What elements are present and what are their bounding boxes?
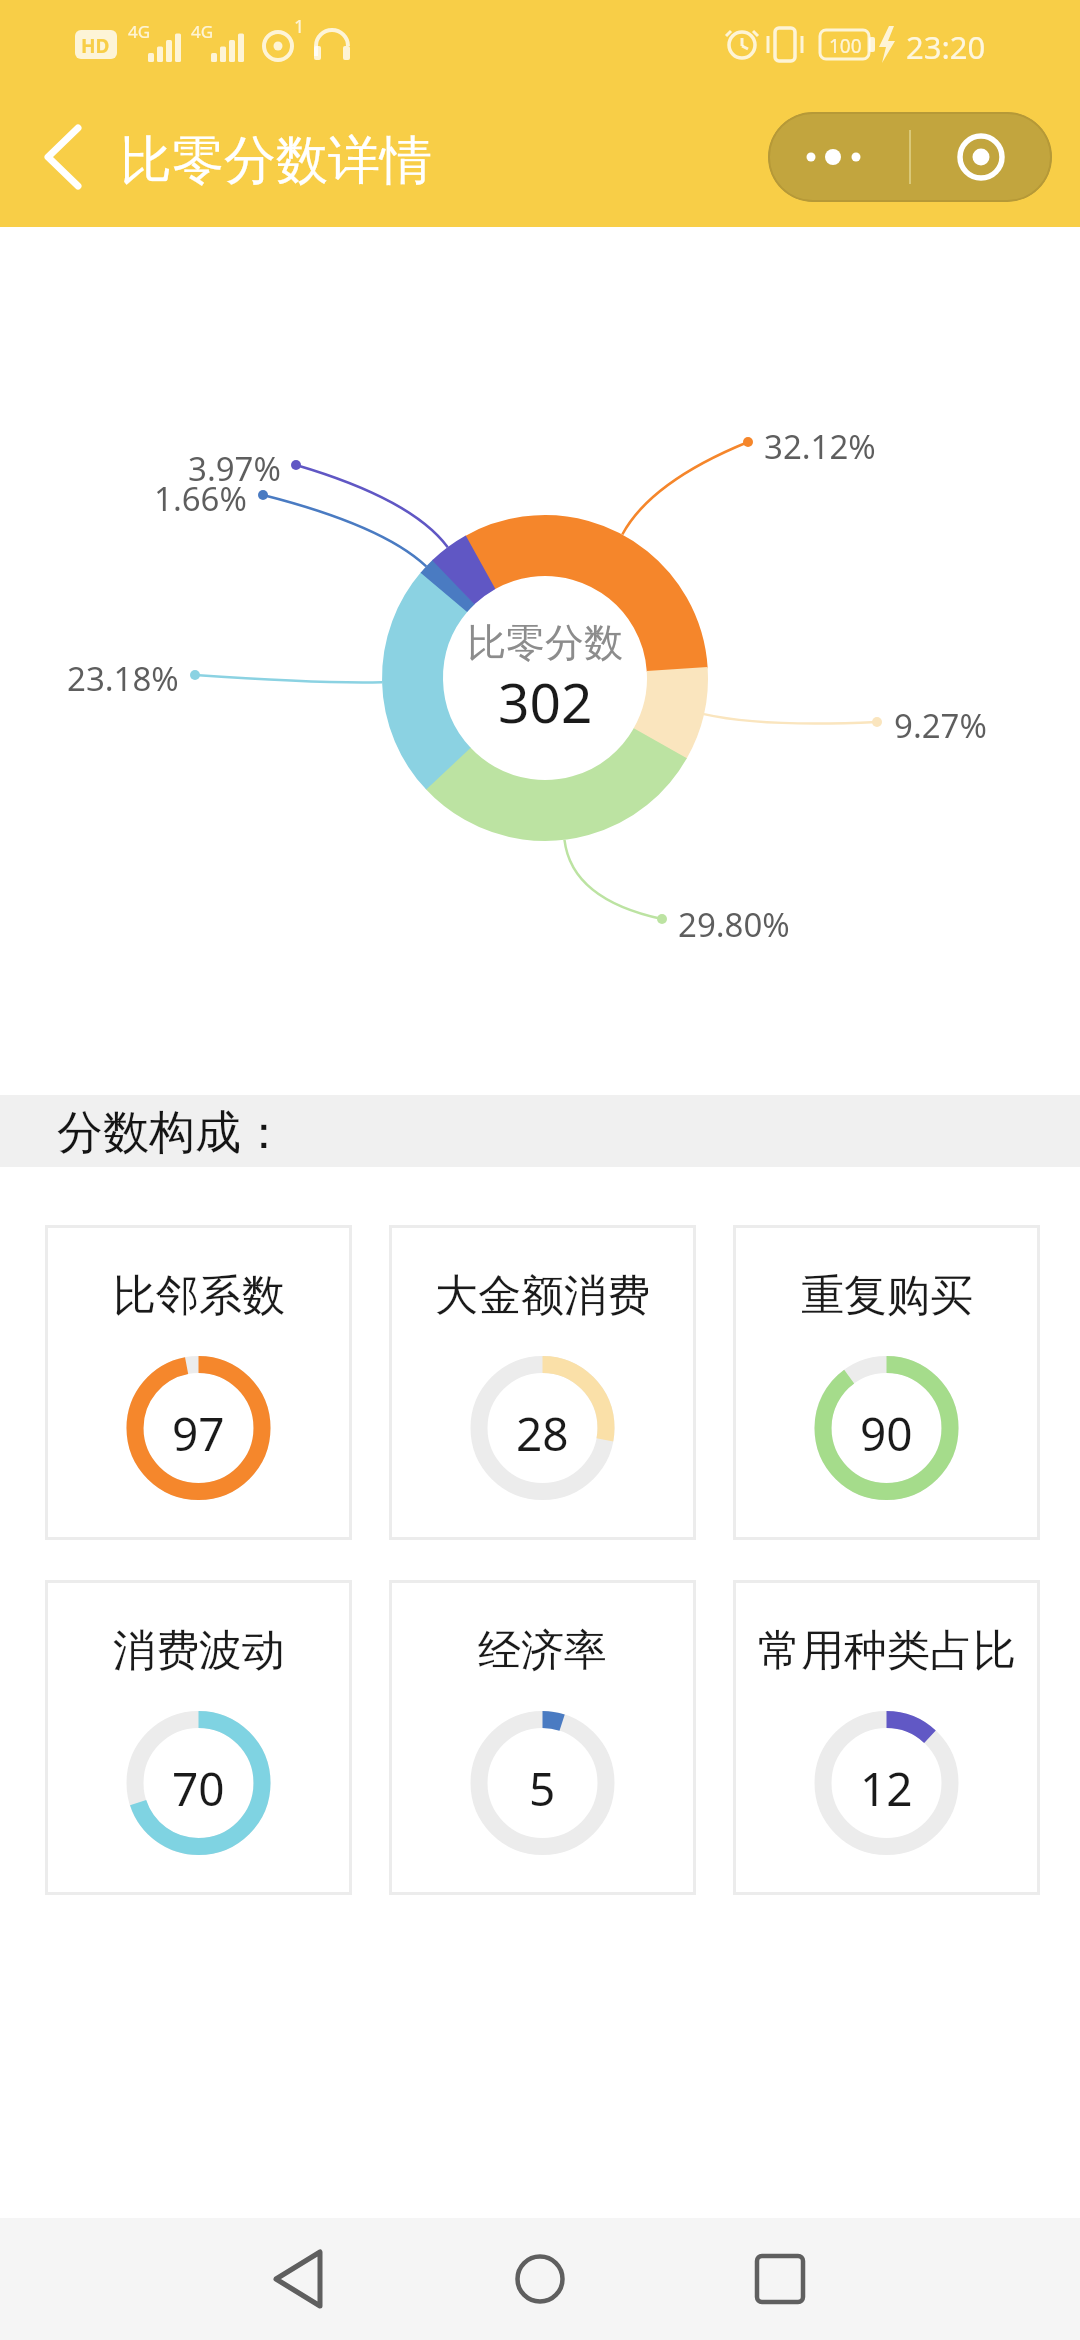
staticText: 97 <box>172 1402 225 1454</box>
staticText: 23:20 <box>906 26 986 68</box>
staticText: 90 <box>860 1402 913 1454</box>
staticText: 1 <box>294 14 305 39</box>
button[interactable] <box>768 112 910 202</box>
staticText: 比零分数 <box>467 618 623 667</box>
button[interactable] <box>700 2218 860 2340</box>
staticText: 消费波动 <box>113 1624 285 1676</box>
staticText: 32.12% <box>764 424 876 469</box>
staticText: 比零分数详情 <box>120 128 432 194</box>
staticText: 9.27% <box>894 703 987 748</box>
staticText: 经济率 <box>478 1624 607 1676</box>
staticText: 4G <box>128 20 151 43</box>
staticText: 302 <box>498 664 593 726</box>
staticText: 5 <box>529 1757 556 1809</box>
staticText: 分数构成： <box>57 1104 287 1162</box>
staticText: 常用种类占比 <box>758 1624 1016 1676</box>
staticText: 大金额消费 <box>435 1269 650 1321</box>
staticText: 29.80% <box>678 902 790 947</box>
staticText: 70 <box>172 1757 225 1809</box>
staticText: 100 <box>829 33 862 59</box>
button[interactable]: 常用种类占比 <box>733 1580 1040 1895</box>
staticText: 28 <box>516 1402 569 1454</box>
button[interactable]: 重复购买 <box>733 1225 1040 1540</box>
button[interactable]: 消费波动 <box>45 1580 352 1895</box>
staticText: 比邻系数 <box>113 1269 285 1321</box>
staticText: 1.66% <box>154 476 247 514</box>
staticText: HD <box>81 33 110 59</box>
staticText: 3.97% <box>188 446 281 484</box>
button[interactable] <box>30 120 100 195</box>
button[interactable]: 大金额消费 <box>389 1225 696 1540</box>
button[interactable]: 经济率 <box>389 1580 696 1895</box>
button[interactable] <box>910 112 1052 202</box>
staticText: 12 <box>860 1757 913 1809</box>
staticText: 23.18% <box>67 656 179 694</box>
staticText: 4G <box>191 20 214 43</box>
button[interactable] <box>240 2218 400 2340</box>
button[interactable]: 比邻系数 <box>45 1225 352 1540</box>
button[interactable] <box>460 2218 620 2340</box>
staticText: 重复购买 <box>801 1269 973 1321</box>
